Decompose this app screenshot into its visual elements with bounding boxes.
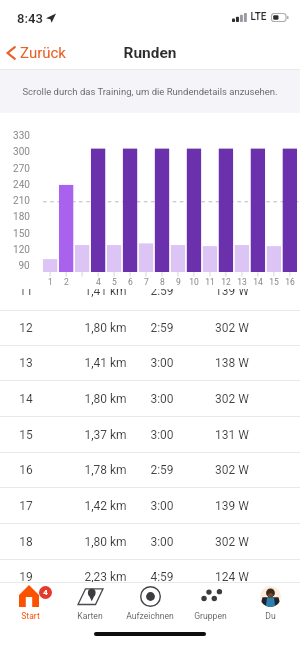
staticText: Gruppen <box>194 611 227 621</box>
staticText: 14 <box>19 392 33 406</box>
button[interactable]: 17 <box>0 488 300 524</box>
staticText: Start <box>21 611 40 621</box>
button[interactable]: 19 <box>0 559 300 595</box>
staticText: 8:43 <box>17 11 43 26</box>
button[interactable]: Start <box>0 583 60 626</box>
staticText: 13 <box>19 356 33 370</box>
staticText: 8 <box>160 277 165 287</box>
button[interactable]: 18 <box>0 524 300 560</box>
button[interactable]: Aufzeichnen <box>120 583 180 626</box>
button[interactable]: 12 <box>0 310 300 346</box>
staticText: 138 W <box>215 356 249 370</box>
staticText: LTE <box>250 11 267 23</box>
staticText: 19 <box>19 570 33 584</box>
staticText: 12 <box>221 277 231 287</box>
staticText: 4 <box>96 277 101 287</box>
staticText: 5 <box>112 277 117 287</box>
staticText: Du <box>265 611 276 621</box>
staticText: 1,42 km <box>84 499 127 513</box>
button[interactable]: Zurück <box>0 39 76 67</box>
button[interactable]: Karten <box>60 583 120 626</box>
staticText: 330 <box>13 130 30 142</box>
staticText: 9 <box>176 277 181 287</box>
staticText: 7 <box>144 277 149 287</box>
staticText: 302 W <box>215 463 249 477</box>
staticText: 18 <box>19 535 33 549</box>
staticText: 15 <box>269 277 279 287</box>
staticText: 1,80 km <box>84 321 127 335</box>
staticText: 1,78 km <box>84 463 127 477</box>
staticText: Runden <box>123 44 177 62</box>
staticText: 3:00 <box>150 356 174 370</box>
staticText: 210 <box>13 195 30 207</box>
button[interactable]: 15 <box>0 417 300 453</box>
staticText: 300 <box>13 146 30 158</box>
staticText: 180 <box>13 211 30 223</box>
staticText: 14 <box>253 277 263 287</box>
staticText: 1,37 km <box>84 428 127 442</box>
staticText: 3:00 <box>150 535 174 549</box>
button[interactable]: 14 <box>0 381 300 417</box>
staticText: 1,41 km <box>84 289 127 298</box>
staticText: 10 <box>189 277 199 287</box>
staticText: 1,41 km <box>84 356 127 370</box>
staticText: 11 <box>19 289 33 298</box>
staticText: 90 <box>18 260 30 272</box>
staticText: 15 <box>19 428 33 442</box>
staticText: 240 <box>13 179 30 191</box>
staticText: 270 <box>13 163 30 175</box>
staticText: 4 <box>43 588 48 597</box>
staticText: 4:59 <box>150 570 174 584</box>
staticText: 1 <box>48 277 53 287</box>
staticText: 120 <box>13 244 30 256</box>
staticText: 302 W <box>215 392 249 406</box>
staticText: 16 <box>19 463 33 477</box>
staticText: 2 <box>64 277 69 287</box>
staticText: 6 <box>128 277 133 287</box>
staticText: 3:00 <box>150 392 174 406</box>
staticText: 3:00 <box>150 499 174 513</box>
staticText: 1,80 km <box>84 392 127 406</box>
staticText: 302 W <box>215 321 249 335</box>
staticText: 17 <box>19 499 33 513</box>
staticText: Aufzeichnen <box>126 611 174 621</box>
staticText: 302 W <box>215 535 249 549</box>
staticText: Scrolle durch das Training, um die Runde… <box>22 86 278 97</box>
staticText: Zurück <box>20 44 66 62</box>
button[interactable]: 13 <box>0 345 300 381</box>
button[interactable]: 16 <box>0 452 300 488</box>
staticText: 2:59 <box>150 321 174 335</box>
button[interactable]: Du <box>240 583 300 626</box>
staticText: 12 <box>19 321 33 335</box>
staticText: 124 W <box>215 570 249 584</box>
staticText: 2:59 <box>150 289 174 298</box>
staticText: 13 <box>237 277 247 287</box>
button[interactable]: Gruppen <box>180 583 240 626</box>
staticText: Karten <box>77 611 103 621</box>
staticText: 131 W <box>215 428 249 442</box>
staticText: 11 <box>205 277 215 287</box>
staticText: 1,80 km <box>84 535 127 549</box>
staticText: 3:00 <box>150 428 174 442</box>
staticText: 2:59 <box>150 463 174 477</box>
staticText: 16 <box>285 277 295 287</box>
staticText: 139 W <box>215 499 249 513</box>
staticText: 139 W <box>215 289 249 298</box>
staticText: 2,23 km <box>84 570 127 584</box>
staticText: 150 <box>13 228 30 240</box>
button[interactable]: 11 <box>0 289 300 310</box>
